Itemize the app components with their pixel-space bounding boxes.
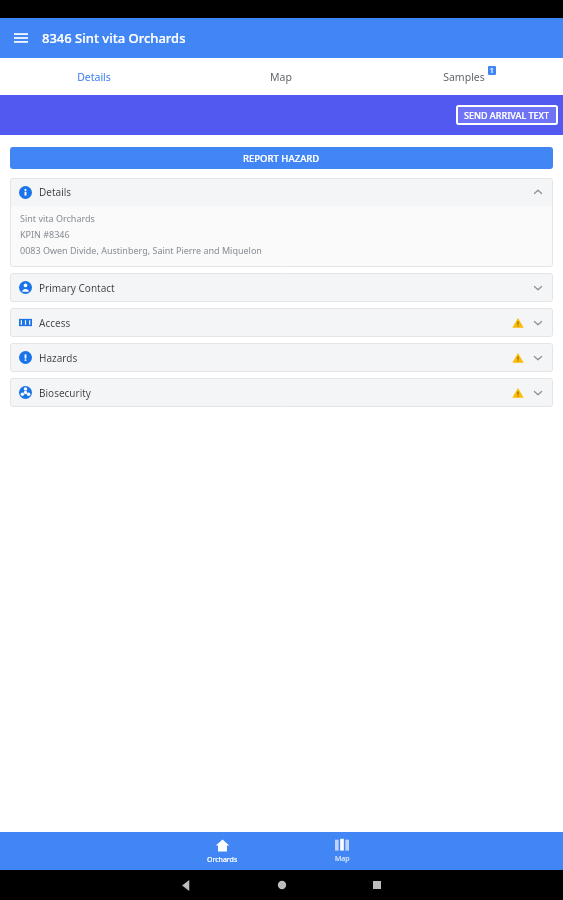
staticText: Map — [270, 70, 292, 84]
button[interactable]: Access — [10, 308, 553, 337]
staticText: Details — [39, 185, 72, 199]
staticText: Samples — [443, 70, 485, 84]
staticText: Access — [39, 316, 71, 330]
staticText: 8346 Sint vita Orchards — [42, 29, 186, 47]
button[interactable]: Details — [0, 58, 187, 95]
staticText: Sint vita Orchards — [20, 212, 95, 224]
staticText: KPIN #8346 — [20, 228, 70, 240]
button[interactable]: Open navigation menu — [8, 25, 34, 51]
button[interactable]: REPORT HAZARD — [10, 147, 553, 169]
staticText: REPORT HAZARD — [243, 152, 320, 165]
button[interactable]: Details — [10, 178, 553, 206]
button[interactable]: Map — [287, 832, 397, 870]
staticText: Hazards — [39, 351, 78, 365]
staticText: 0083 Owen Divide, Austinberg, Saint Pier… — [20, 244, 262, 256]
staticText: Orchards — [207, 855, 238, 865]
staticText: Details — [77, 70, 111, 84]
staticText: 1 — [490, 66, 494, 75]
button[interactable]: Primary Contact — [10, 273, 553, 302]
button[interactable]: Hazards — [10, 343, 553, 372]
button[interactable]: Samples — [375, 58, 563, 95]
button[interactable]: Map — [187, 58, 375, 95]
button[interactable]: SEND ARRIVAL TEXT — [456, 105, 558, 125]
staticText: Map — [335, 854, 350, 864]
staticText: Primary Contact — [39, 281, 115, 295]
button[interactable]: Orchards — [167, 832, 277, 870]
button[interactable]: Biosecurity — [10, 378, 553, 407]
staticText: SEND ARRIVAL TEXT — [464, 109, 550, 121]
staticText: Biosecurity — [39, 386, 91, 400]
